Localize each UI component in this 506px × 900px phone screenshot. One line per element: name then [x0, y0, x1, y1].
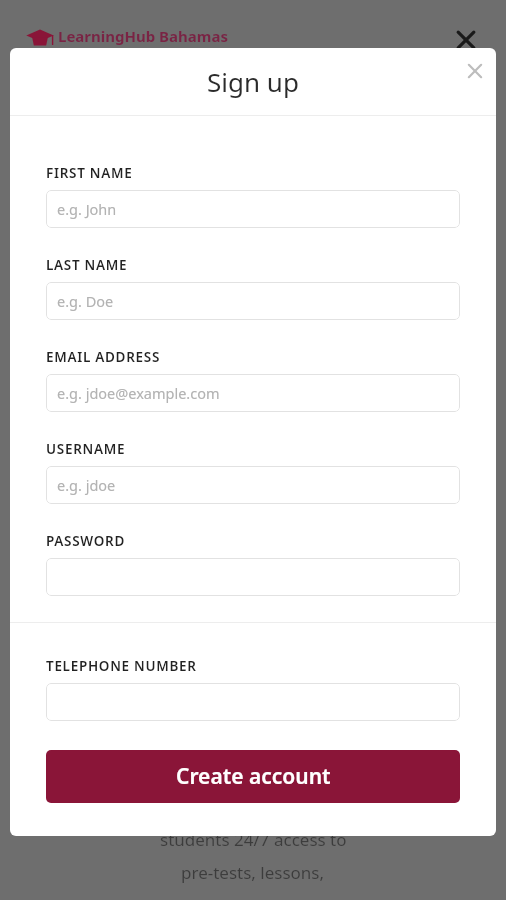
- staticText: Sign up: [207, 64, 299, 99]
- staticText: Create account: [176, 762, 331, 791]
- staticText: FIRST NAME: [46, 164, 133, 182]
- staticText: TELEPHONE NUMBER: [46, 657, 197, 675]
- staticText: EMAIL ADDRESS: [46, 348, 161, 366]
- staticText: students 24/7 access to: [160, 828, 347, 851]
- staticText: e.g. John: [57, 199, 117, 219]
- staticText: USERNAME: [46, 440, 126, 458]
- button[interactable]: e.g. jdoe@example.com: [46, 374, 460, 412]
- button[interactable]: Create account: [46, 750, 460, 803]
- staticText: LAST NAME: [46, 256, 128, 274]
- staticText: pre-tests, lessons,: [181, 861, 325, 884]
- button[interactable]: [46, 558, 460, 596]
- staticText: e.g. jdoe@example.com: [57, 383, 220, 403]
- button[interactable]: e.g. jdoe: [46, 466, 460, 504]
- button[interactable]: e.g. Doe: [46, 282, 460, 320]
- staticText: e.g. jdoe: [57, 475, 116, 495]
- staticText: PASSWORD: [46, 532, 126, 550]
- staticText: LearningHub Bahamas: [58, 26, 228, 46]
- other: Close menu: [452, 26, 480, 54]
- staticText: e.g. Doe: [57, 291, 114, 311]
- button[interactable]: Close: [464, 60, 486, 82]
- button[interactable]: e.g. John: [46, 190, 460, 228]
- button[interactable]: [46, 683, 460, 721]
